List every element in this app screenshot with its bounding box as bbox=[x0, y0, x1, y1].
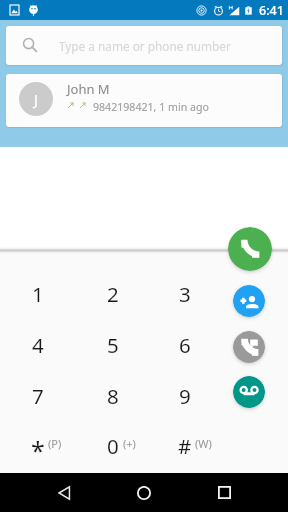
button[interactable]: Type a name or phone number bbox=[6, 26, 282, 65]
staticText: (+) bbox=[123, 436, 136, 451]
button[interactable]: * bbox=[1, 420, 75, 471]
button[interactable]: 3 bbox=[148, 268, 222, 319]
staticText: 7 bbox=[32, 382, 44, 410]
staticText: 3 bbox=[179, 280, 191, 308]
staticText: 5 bbox=[107, 331, 119, 359]
button[interactable]: 2 bbox=[76, 268, 150, 319]
staticText: 6:41 bbox=[259, 2, 284, 19]
button[interactable]: 8 bbox=[76, 370, 150, 421]
button[interactable]: Recents bbox=[184, 473, 264, 512]
staticText: J bbox=[34, 90, 38, 109]
button[interactable]: Add contact bbox=[233, 285, 265, 317]
staticText: (W) bbox=[195, 436, 212, 451]
button[interactable]: 9 bbox=[148, 370, 222, 421]
staticText: (P) bbox=[48, 436, 62, 451]
staticText: 2 bbox=[107, 280, 119, 308]
button[interactable]: 1 bbox=[1, 268, 75, 319]
button[interactable]: 0 bbox=[76, 420, 150, 471]
button[interactable]: 7 bbox=[1, 370, 75, 421]
button[interactable]: 4 bbox=[1, 319, 75, 370]
staticText: 6 bbox=[179, 331, 191, 359]
staticText: 0 bbox=[107, 432, 119, 460]
staticText: John M bbox=[67, 80, 110, 98]
button[interactable]: J bbox=[6, 74, 282, 127]
staticText: 8 bbox=[107, 382, 119, 410]
button[interactable]: Home bbox=[104, 473, 184, 512]
staticText: 1 bbox=[32, 280, 44, 308]
staticText: 4 bbox=[32, 331, 44, 359]
button[interactable]: 6 bbox=[148, 319, 222, 370]
button[interactable]: Voicemail bbox=[233, 376, 265, 408]
staticText: * bbox=[31, 433, 45, 467]
button[interactable]: # bbox=[148, 420, 222, 471]
button[interactable]: Call bbox=[228, 227, 272, 271]
button[interactable]: 5 bbox=[76, 319, 150, 370]
staticText: # bbox=[178, 432, 192, 460]
button[interactable]: Call options bbox=[233, 331, 265, 363]
staticText: Type a name or phone number bbox=[59, 38, 231, 54]
staticText: 9 bbox=[179, 382, 191, 410]
staticText: 9842198421, 1 min ago bbox=[93, 100, 209, 114]
button[interactable]: Back bbox=[24, 473, 104, 512]
